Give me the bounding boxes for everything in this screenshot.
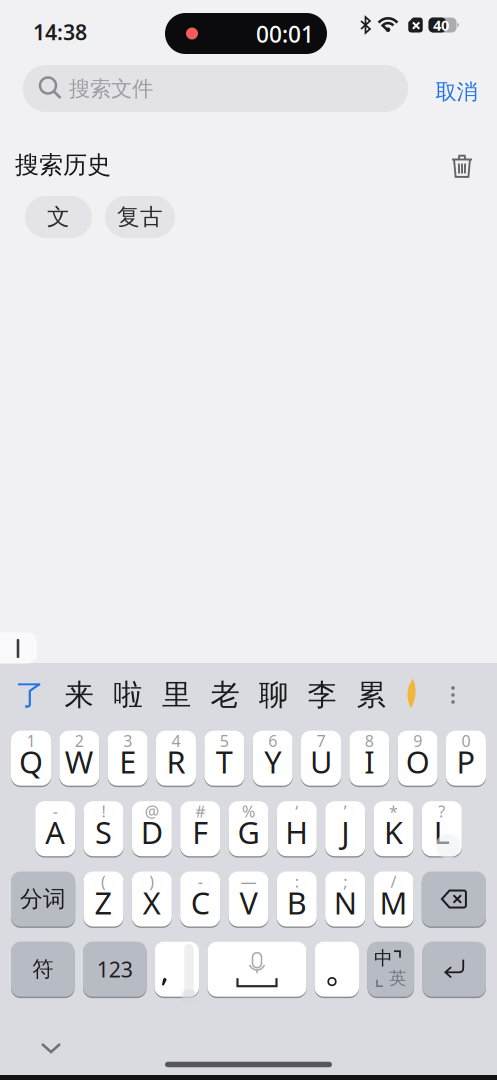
staticText: A	[45, 812, 65, 852]
staticText: 文	[47, 203, 70, 231]
button[interactable]: -	[35, 801, 75, 856]
staticText: -	[198, 871, 203, 892]
button[interactable]: %	[228, 801, 268, 856]
button[interactable]: 清空搜索历史	[451, 154, 472, 177]
staticText: ;	[343, 871, 347, 892]
button[interactable]: -	[180, 871, 220, 926]
staticText: @	[145, 801, 159, 822]
staticText: 4	[171, 730, 180, 751]
staticText: R	[166, 741, 185, 782]
staticText: N	[334, 882, 357, 923]
button[interactable]: 聊	[259, 677, 288, 713]
button[interactable]: 0	[446, 731, 486, 786]
button[interactable]: 啦	[113, 677, 142, 713]
staticText: F	[192, 812, 208, 852]
staticText: 符	[32, 956, 53, 982]
staticText: S	[95, 812, 112, 852]
button[interactable]: 删除	[422, 871, 486, 926]
button[interactable]: *	[373, 801, 413, 856]
button[interactable]: 逗号	[154, 942, 199, 997]
button[interactable]: 李	[307, 677, 336, 713]
button[interactable]: #	[180, 801, 220, 856]
staticText: G	[237, 812, 259, 852]
button[interactable]: 9	[398, 731, 438, 786]
staticText: H	[285, 812, 308, 852]
staticText: J	[341, 812, 349, 852]
staticText: 复古	[117, 203, 163, 231]
button[interactable]: —	[228, 871, 268, 926]
button[interactable]: 来	[64, 677, 93, 713]
staticText: M	[379, 882, 407, 923]
staticText: -	[53, 801, 58, 822]
button[interactable]: 更多候选字	[451, 686, 455, 704]
staticText: C	[191, 882, 210, 923]
staticText: 啦	[113, 677, 142, 713]
button[interactable]: 搜索文件	[23, 65, 408, 112]
staticText: /	[390, 871, 396, 892]
staticText: 40	[433, 15, 449, 35]
staticText: 取消	[435, 79, 477, 105]
staticText: ?	[438, 801, 445, 822]
button[interactable]: (	[83, 871, 123, 926]
button[interactable]: 7	[301, 731, 341, 786]
button[interactable]: 5	[204, 731, 244, 786]
button[interactable]: )	[132, 871, 172, 926]
button[interactable]: 收起键盘	[42, 1044, 60, 1052]
button[interactable]: 4	[156, 731, 196, 786]
button[interactable]: 8	[349, 731, 389, 786]
button[interactable]: 符	[11, 942, 74, 997]
staticText: O	[406, 741, 430, 782]
button[interactable]: 换行	[422, 942, 486, 997]
button[interactable]: 3	[108, 731, 148, 786]
button[interactable]: 切换中英文	[367, 942, 414, 997]
staticText: D	[141, 812, 163, 852]
staticText: B	[287, 882, 307, 923]
staticText: X	[143, 882, 161, 923]
staticText: 1	[26, 730, 35, 751]
button[interactable]: 空格	[207, 942, 306, 997]
button[interactable]: 老	[210, 677, 239, 713]
button[interactable]: !	[83, 801, 123, 856]
button[interactable]: ?	[422, 801, 462, 856]
staticText: 0	[461, 730, 470, 751]
button[interactable]: 复古	[105, 196, 175, 238]
button[interactable]: @	[132, 801, 172, 856]
button[interactable]: 了	[15, 677, 44, 713]
button[interactable]: 123	[83, 942, 146, 997]
staticText: 中	[374, 947, 393, 970]
staticText: %	[242, 801, 255, 822]
button[interactable]: ‘	[277, 801, 317, 856]
button[interactable]: 2	[59, 731, 99, 786]
button[interactable]: :	[277, 871, 317, 926]
staticText: —	[240, 871, 256, 892]
staticText: 累	[356, 677, 385, 713]
staticText: L	[434, 812, 450, 852]
button[interactable]: 文	[25, 196, 92, 238]
staticText: 聊	[259, 677, 288, 713]
staticText: 00:01	[256, 19, 314, 49]
staticText: T	[216, 741, 233, 782]
button[interactable]: 里	[162, 677, 191, 713]
button[interactable]: /	[373, 871, 413, 926]
button[interactable]: 累	[356, 677, 385, 713]
button[interactable]: 分词	[11, 871, 75, 926]
staticText: P	[456, 741, 475, 782]
staticText: 老	[210, 677, 239, 713]
button[interactable]: 1	[11, 731, 51, 786]
staticText: 来	[64, 677, 93, 713]
staticText: 8	[365, 730, 374, 751]
button[interactable]: 表情候选	[402, 678, 419, 709]
button[interactable]: 句号	[314, 942, 359, 997]
staticText: ’	[344, 801, 347, 822]
button[interactable]: ’	[325, 801, 365, 856]
button[interactable]: 6	[253, 731, 293, 786]
button[interactable]: ;	[325, 871, 365, 926]
staticText: 里	[162, 677, 191, 713]
staticText: #	[195, 801, 205, 822]
button[interactable]: 取消	[435, 79, 477, 105]
staticText: E	[119, 741, 136, 782]
staticText: 分词	[20, 885, 66, 913]
staticText: 英	[389, 968, 406, 989]
staticText: 6	[268, 730, 277, 751]
staticText: 了	[15, 677, 44, 713]
